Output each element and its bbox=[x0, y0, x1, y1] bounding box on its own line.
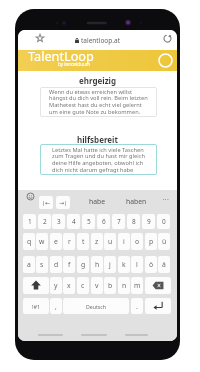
button[interactable]: i bbox=[118, 233, 130, 250]
button[interactable]: o bbox=[131, 233, 143, 250]
button[interactable]: Reload bbox=[163, 34, 172, 43]
staticText: n bbox=[122, 281, 127, 290]
staticText: 0 bbox=[162, 217, 166, 226]
staticText: p bbox=[149, 237, 154, 246]
button[interactable]: 3 bbox=[52, 214, 65, 229]
staticText: ehrgeizig bbox=[18, 75, 177, 86]
button[interactable]: d bbox=[50, 256, 62, 273]
button[interactable]: r bbox=[63, 233, 75, 250]
staticText: 8 bbox=[132, 217, 136, 226]
button[interactable]: ö bbox=[145, 256, 157, 273]
button[interactable]: Wenn du etwas erreichen willst hängst du… bbox=[40, 87, 157, 117]
button[interactable]: 1 bbox=[23, 214, 36, 229]
staticText: q bbox=[27, 237, 32, 246]
button[interactable]: w bbox=[36, 233, 48, 250]
button[interactable]: 5 bbox=[82, 214, 95, 229]
button[interactable]: ä bbox=[158, 256, 170, 273]
button[interactable]: Bookmark bbox=[35, 33, 45, 43]
button[interactable]: Profile bbox=[158, 53, 173, 68]
staticText: r bbox=[68, 237, 71, 246]
button[interactable]: talentloop.at bbox=[75, 36, 120, 45]
staticText: |← bbox=[42, 199, 51, 207]
staticText: m bbox=[134, 281, 141, 290]
button[interactable]: 4 bbox=[67, 214, 80, 229]
button[interactable]: s bbox=[36, 256, 48, 273]
button[interactable]: Back bbox=[38, 330, 63, 340]
button[interactable]: u bbox=[104, 233, 116, 250]
button[interactable]: 7 bbox=[112, 214, 125, 229]
button[interactable]: . bbox=[131, 298, 143, 314]
staticText: 1 bbox=[28, 217, 32, 226]
staticText: talentloop.at bbox=[81, 36, 120, 45]
staticText: y bbox=[54, 281, 58, 290]
button[interactable]: k bbox=[118, 256, 130, 273]
staticText: c bbox=[81, 281, 85, 290]
button[interactable]: j bbox=[104, 256, 116, 273]
staticText: Wenn du etwas erreichen willst hängst du… bbox=[49, 88, 148, 116]
button[interactable]: Shift bbox=[23, 277, 49, 294]
button[interactable]: m bbox=[131, 277, 143, 294]
staticText: h bbox=[95, 260, 100, 269]
button[interactable]: Backspace bbox=[145, 277, 171, 294]
staticText: j bbox=[109, 260, 111, 269]
staticText: ⋯ bbox=[162, 196, 169, 204]
staticText: f bbox=[68, 260, 71, 269]
button[interactable]: , bbox=[50, 298, 62, 314]
button[interactable]: f bbox=[63, 256, 75, 273]
button[interactable]: t bbox=[77, 233, 89, 250]
staticText: e bbox=[54, 237, 58, 246]
staticText: 5 bbox=[87, 217, 91, 226]
button[interactable]: Emoji bbox=[25, 191, 36, 202]
staticText: v bbox=[95, 281, 99, 290]
staticText: 4 bbox=[72, 217, 76, 226]
button[interactable]: !#1 bbox=[23, 298, 49, 314]
button[interactable]: 9 bbox=[142, 214, 155, 229]
button[interactable]: Letztes Mal hatte ich viele Taschen zum … bbox=[40, 144, 157, 175]
staticText: k bbox=[122, 260, 126, 269]
button[interactable]: z bbox=[91, 233, 103, 250]
button[interactable]: 6 bbox=[97, 214, 110, 229]
staticText: hilfsbereit bbox=[18, 134, 177, 145]
button[interactable]: n bbox=[118, 277, 130, 294]
button[interactable]: 0 bbox=[157, 214, 170, 229]
button[interactable]: ü bbox=[158, 233, 170, 250]
staticText: . bbox=[136, 302, 138, 311]
staticText: o bbox=[135, 237, 140, 246]
staticText: Letztes Mal hatte ich viele Taschen zum … bbox=[52, 146, 145, 174]
button[interactable]: e bbox=[50, 233, 62, 250]
staticText: i bbox=[123, 237, 125, 246]
button[interactable]: 8 bbox=[127, 214, 140, 229]
button[interactable]: v bbox=[91, 277, 103, 294]
button[interactable]: a bbox=[23, 256, 35, 273]
staticText: 2 bbox=[43, 217, 47, 226]
button[interactable]: Space bbox=[63, 298, 129, 314]
staticText: b bbox=[108, 281, 113, 290]
staticText: →| bbox=[59, 199, 68, 207]
button[interactable]: q bbox=[23, 233, 35, 250]
button[interactable]: habe bbox=[89, 197, 106, 206]
button[interactable]: Enter bbox=[145, 298, 171, 314]
button[interactable]: c bbox=[77, 277, 89, 294]
staticText: s bbox=[40, 260, 44, 269]
button[interactable]: b bbox=[104, 277, 116, 294]
staticText: 9 bbox=[147, 217, 151, 226]
staticText: z bbox=[95, 237, 99, 246]
button[interactable]: p bbox=[145, 233, 157, 250]
button[interactable]: More suggestions bbox=[160, 195, 170, 205]
button[interactable]: h bbox=[91, 256, 103, 273]
staticText: 6 bbox=[102, 217, 106, 226]
staticText: ü bbox=[162, 237, 167, 246]
button[interactable]: x bbox=[63, 277, 75, 294]
button[interactable]: Recent apps bbox=[125, 330, 148, 340]
button[interactable]: Previous suggestion bbox=[39, 196, 53, 209]
button[interactable]: haben bbox=[126, 197, 147, 206]
button[interactable]: l bbox=[131, 256, 143, 273]
button[interactable]: Next suggestion bbox=[56, 196, 70, 209]
staticText: g bbox=[81, 260, 86, 269]
staticText: Deutsch bbox=[86, 303, 106, 310]
staticText: , bbox=[55, 302, 57, 311]
button[interactable]: y bbox=[50, 277, 62, 294]
button[interactable]: 2 bbox=[38, 214, 51, 229]
button[interactable]: g bbox=[77, 256, 89, 273]
button[interactable]: Home bbox=[81, 330, 107, 340]
